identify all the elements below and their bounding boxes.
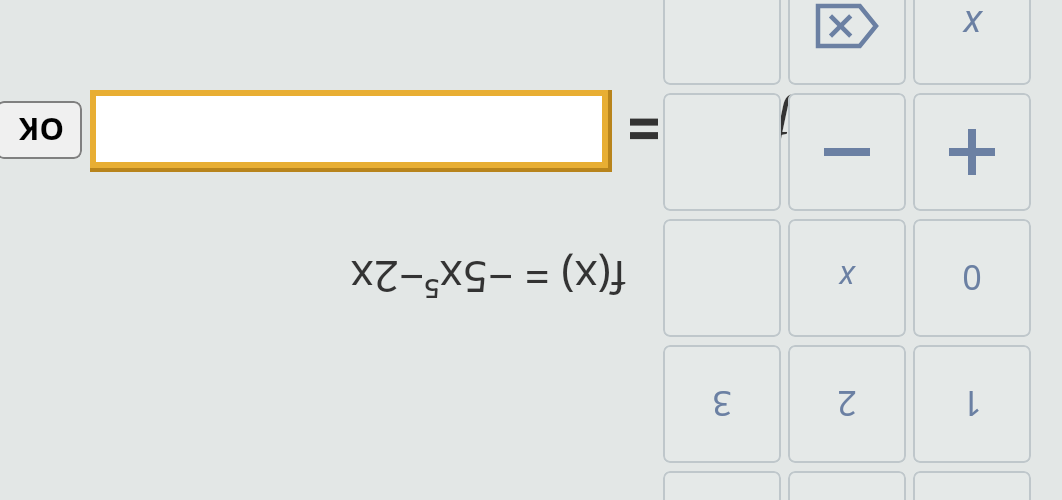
button[interactable]: x [913,0,1031,85]
button[interactable]: x [788,219,906,337]
button[interactable]: OK [0,101,82,159]
button[interactable] [663,93,781,211]
staticText: 0 [962,255,982,301]
staticText: 3 [712,381,732,427]
button[interactable]: Plus [913,93,1031,211]
button[interactable]: Backspace [788,0,906,85]
button[interactable] [788,471,906,500]
button[interactable] [663,219,781,337]
staticText: 1 [962,381,982,427]
staticText: x [839,256,855,300]
button[interactable] [90,90,612,172]
button[interactable] [913,471,1031,500]
button[interactable]: 2 [788,345,906,463]
button[interactable]: 1 [913,345,1031,463]
button[interactable]: Minus [788,93,906,211]
staticText: x [963,0,982,52]
staticText: f(x) = −5x⁵−2x [350,248,626,308]
button[interactable]: 0 [913,219,1031,337]
button[interactable] [663,471,781,500]
staticText: f'(x) [693,92,790,163]
staticText: 2 [837,381,857,427]
staticText: OK [18,109,64,151]
button[interactable]: 3 [663,345,781,463]
button[interactable] [663,0,781,85]
